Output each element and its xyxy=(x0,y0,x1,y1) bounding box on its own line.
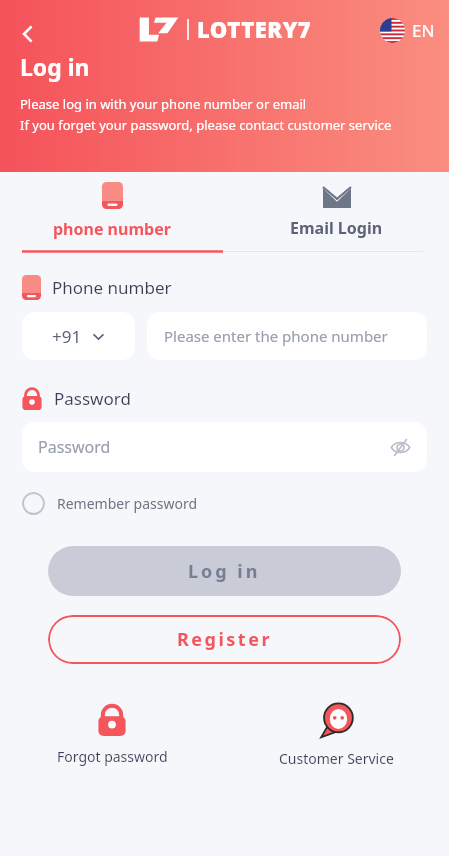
staticText: Password xyxy=(54,387,131,410)
button[interactable]: +91 xyxy=(22,312,135,360)
staticText: Phone number xyxy=(52,276,172,299)
staticText: Customer Service xyxy=(279,749,394,768)
staticText: +91 xyxy=(52,325,82,348)
staticText: Remember password xyxy=(57,494,198,513)
button[interactable]: Password xyxy=(22,422,427,472)
staticText: Forgot password xyxy=(57,747,168,766)
button[interactable]: Email Login xyxy=(224,182,449,239)
button[interactable]: Back xyxy=(6,12,50,56)
button[interactable]: Please enter the phone number xyxy=(147,312,427,360)
button[interactable]: Customer Service xyxy=(224,702,449,768)
button[interactable]: Forgot password xyxy=(0,702,224,766)
button[interactable]: Show password xyxy=(385,432,415,462)
button[interactable]: Remember password xyxy=(20,490,200,517)
staticText: LOTTERY7 xyxy=(197,14,312,44)
staticText: Log in xyxy=(20,51,90,82)
staticText: Please log in with your phone number or … xyxy=(20,95,307,113)
button[interactable]: Log in xyxy=(48,546,401,596)
staticText: Email Login xyxy=(290,217,383,239)
staticText: Password xyxy=(38,436,111,458)
staticText: phone number xyxy=(53,218,171,240)
button[interactable]: phone number xyxy=(0,182,224,240)
staticText: If you forget your password, please cont… xyxy=(20,116,392,134)
button[interactable]: Language English xyxy=(376,14,439,47)
staticText: Register xyxy=(177,627,272,652)
staticText: Please enter the phone number xyxy=(164,326,388,346)
button[interactable]: Register xyxy=(48,615,401,664)
staticText: Log in xyxy=(188,559,261,584)
staticText: EN xyxy=(412,19,435,42)
other: Language English xyxy=(380,18,405,43)
